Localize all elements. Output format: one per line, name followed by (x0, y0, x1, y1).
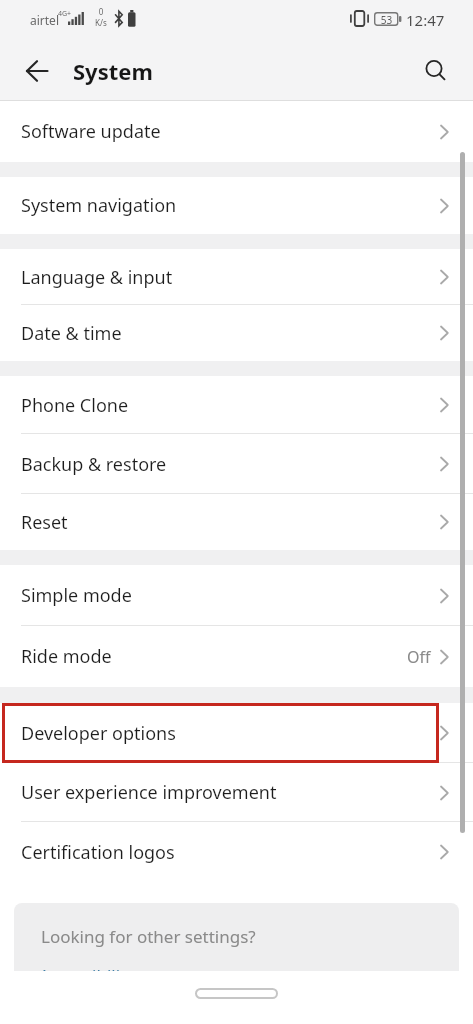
staticText: System navigation (21, 193, 177, 218)
staticText: 4G+ (58, 9, 72, 19)
button[interactable]: User experience improvement (0, 763, 473, 822)
button[interactable]: Ride mode (0, 626, 473, 687)
staticText: Simple mode (21, 583, 132, 608)
button[interactable]: Date & time (0, 305, 473, 361)
staticText: Date & time (21, 321, 122, 346)
staticText: K/s (92, 17, 110, 28)
staticText: Backup & restore (21, 452, 167, 477)
staticText: System (73, 56, 153, 86)
staticText: Accessibility (39, 964, 135, 971)
staticText: Developer options (21, 721, 176, 746)
staticText: Looking for other settings? (41, 925, 256, 948)
staticText: Reset (21, 510, 68, 535)
staticText: Off (407, 646, 431, 668)
button[interactable]: Language & input (0, 249, 473, 305)
button[interactable]: Certification logos (0, 822, 473, 882)
staticText: User experience improvement (21, 780, 277, 805)
staticText: Software update (21, 119, 161, 144)
button[interactable]: Developer options (0, 703, 473, 763)
button[interactable] (423, 57, 449, 83)
staticText: 12:47 (406, 10, 445, 30)
staticText: 53 (375, 13, 398, 27)
button[interactable]: Backup & restore (0, 434, 473, 494)
staticText: Certification logos (21, 840, 175, 865)
button[interactable]: Phone Clone (0, 376, 473, 434)
button[interactable]: Software update (0, 101, 473, 162)
button[interactable] (195, 988, 278, 999)
staticText: Ride mode (21, 644, 112, 669)
button[interactable]: Reset (0, 494, 473, 550)
staticText: 0 (92, 6, 110, 17)
button[interactable]: Simple mode (0, 565, 473, 626)
staticText: Phone Clone (21, 393, 129, 418)
staticText: airtel (30, 12, 59, 28)
button[interactable]: Looking for other settings? (14, 903, 459, 971)
button[interactable]: System navigation (0, 177, 473, 234)
button[interactable] (24, 59, 50, 83)
staticText: Language & input (21, 265, 173, 290)
